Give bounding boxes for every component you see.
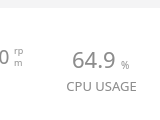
staticText: CPU USAGE [66,77,137,95]
staticText: 64.9 [72,44,116,74]
staticText: rpm [14,44,26,68]
staticText: % [121,58,130,72]
button[interactable]: 1280 [0,44,26,90]
button[interactable]: 64.9 [56,44,146,95]
staticText: 1280 [0,44,10,70]
